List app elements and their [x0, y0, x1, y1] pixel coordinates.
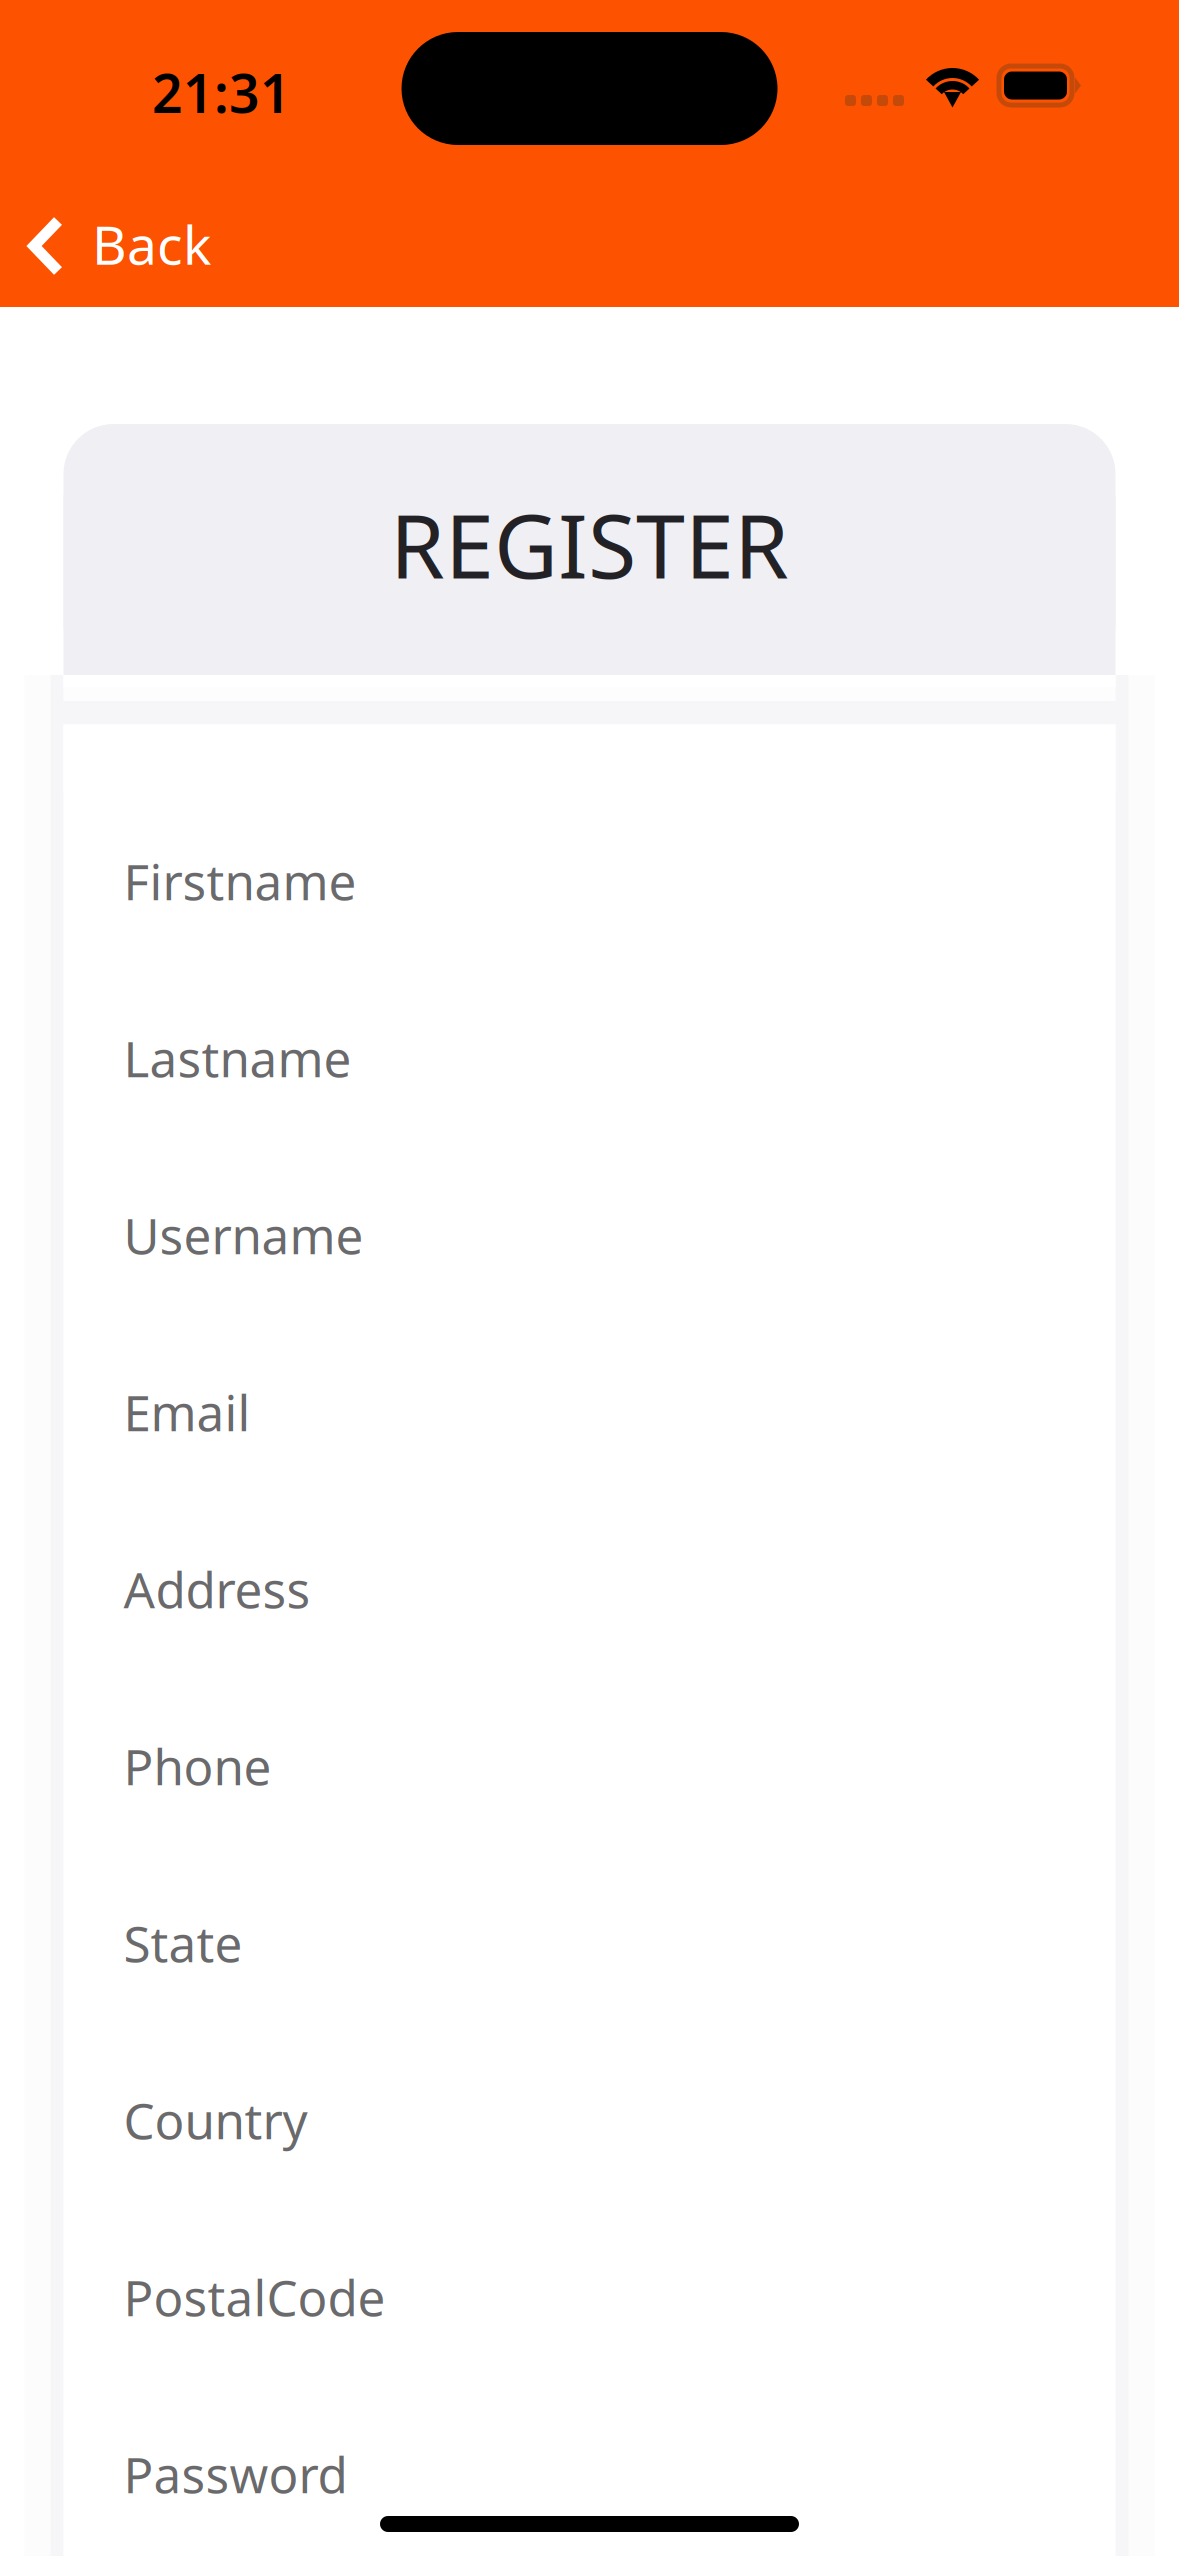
- staticText: Back: [92, 209, 211, 279]
- staticText: Phone: [123, 1733, 271, 1799]
- button[interactable]: Phone: [63, 1677, 1115, 1854]
- button[interactable]: Email: [63, 1323, 1115, 1500]
- button[interactable]: Password: [63, 2385, 1115, 2556]
- staticText: Firstname: [123, 848, 356, 914]
- staticText: PostalCode: [123, 2264, 385, 2330]
- staticText: Email: [123, 1379, 250, 1445]
- staticText: Address: [123, 1556, 310, 1622]
- button[interactable]: Lastname: [63, 969, 1115, 1146]
- button[interactable]: Address: [63, 1500, 1115, 1677]
- button[interactable]: State: [63, 1854, 1115, 2031]
- staticText: State: [123, 1910, 242, 1976]
- button[interactable]: Back: [0, 170, 241, 305]
- button[interactable]: Country: [63, 2031, 1115, 2208]
- staticText: 21:31: [152, 57, 291, 128]
- button[interactable]: PostalCode: [63, 2208, 1115, 2385]
- staticText: Country: [123, 2087, 307, 2153]
- button[interactable]: Firstname: [63, 792, 1115, 969]
- button[interactable]: Username: [63, 1146, 1115, 1323]
- staticText: Username: [123, 1202, 363, 1268]
- staticText: Password: [123, 2441, 347, 2507]
- staticText: REGISTER: [390, 486, 789, 603]
- staticText: Lastname: [123, 1025, 351, 1091]
